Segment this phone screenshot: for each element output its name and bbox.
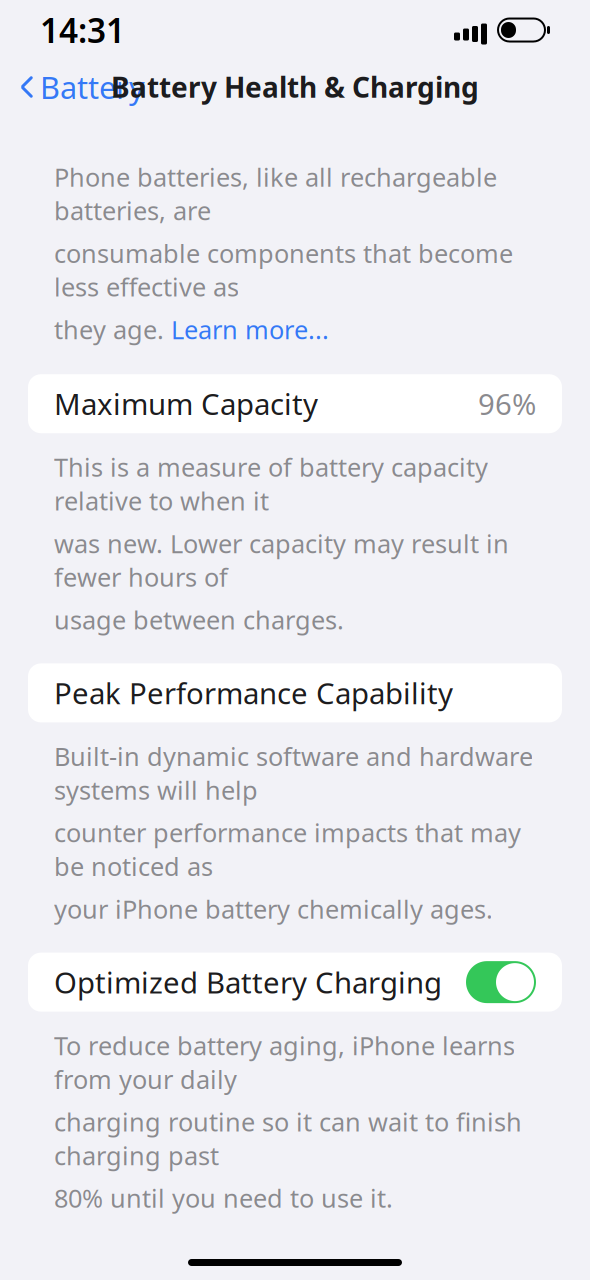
staticText: your iPhone battery chemically ages. bbox=[54, 892, 493, 926]
staticText: This is a measure of battery capacity re… bbox=[54, 450, 488, 517]
button[interactable]: Battery bbox=[16, 59, 149, 115]
staticText: counter performance impacts that may be … bbox=[54, 816, 521, 883]
staticText: charging routine so it can wait to finis… bbox=[54, 1105, 522, 1172]
staticText: Phone batteries, like all rechargeable b… bbox=[54, 160, 497, 227]
staticText: Learn more... bbox=[171, 313, 329, 346]
staticText: Optimized Battery Charging bbox=[54, 963, 442, 1002]
staticText: Battery Health & Charging bbox=[111, 68, 479, 106]
staticText: Maximum Capacity bbox=[54, 384, 318, 423]
staticText: 96% bbox=[478, 384, 536, 423]
staticText: they age. bbox=[54, 313, 171, 346]
staticText: Peak Performance Capability bbox=[54, 673, 453, 712]
staticText: usage between charges. bbox=[54, 603, 344, 636]
staticText: was new. Lower capacity may result in fe… bbox=[54, 526, 509, 594]
staticText: Built-in dynamic software and hardware s… bbox=[54, 739, 533, 807]
button[interactable]: Peak Performance Capability bbox=[0, 663, 590, 722]
button[interactable]: Maximum Capacity bbox=[0, 374, 590, 433]
staticText: consumable components that become less e… bbox=[54, 236, 513, 304]
staticText: 14:31 bbox=[40, 8, 125, 52]
staticText: 80% until you need to use it. bbox=[54, 1181, 393, 1215]
button[interactable]: Optimized Battery Charging bbox=[0, 953, 590, 1012]
staticText: Battery bbox=[40, 67, 145, 107]
staticText: To reduce battery aging, iPhone learns f… bbox=[54, 1029, 515, 1096]
